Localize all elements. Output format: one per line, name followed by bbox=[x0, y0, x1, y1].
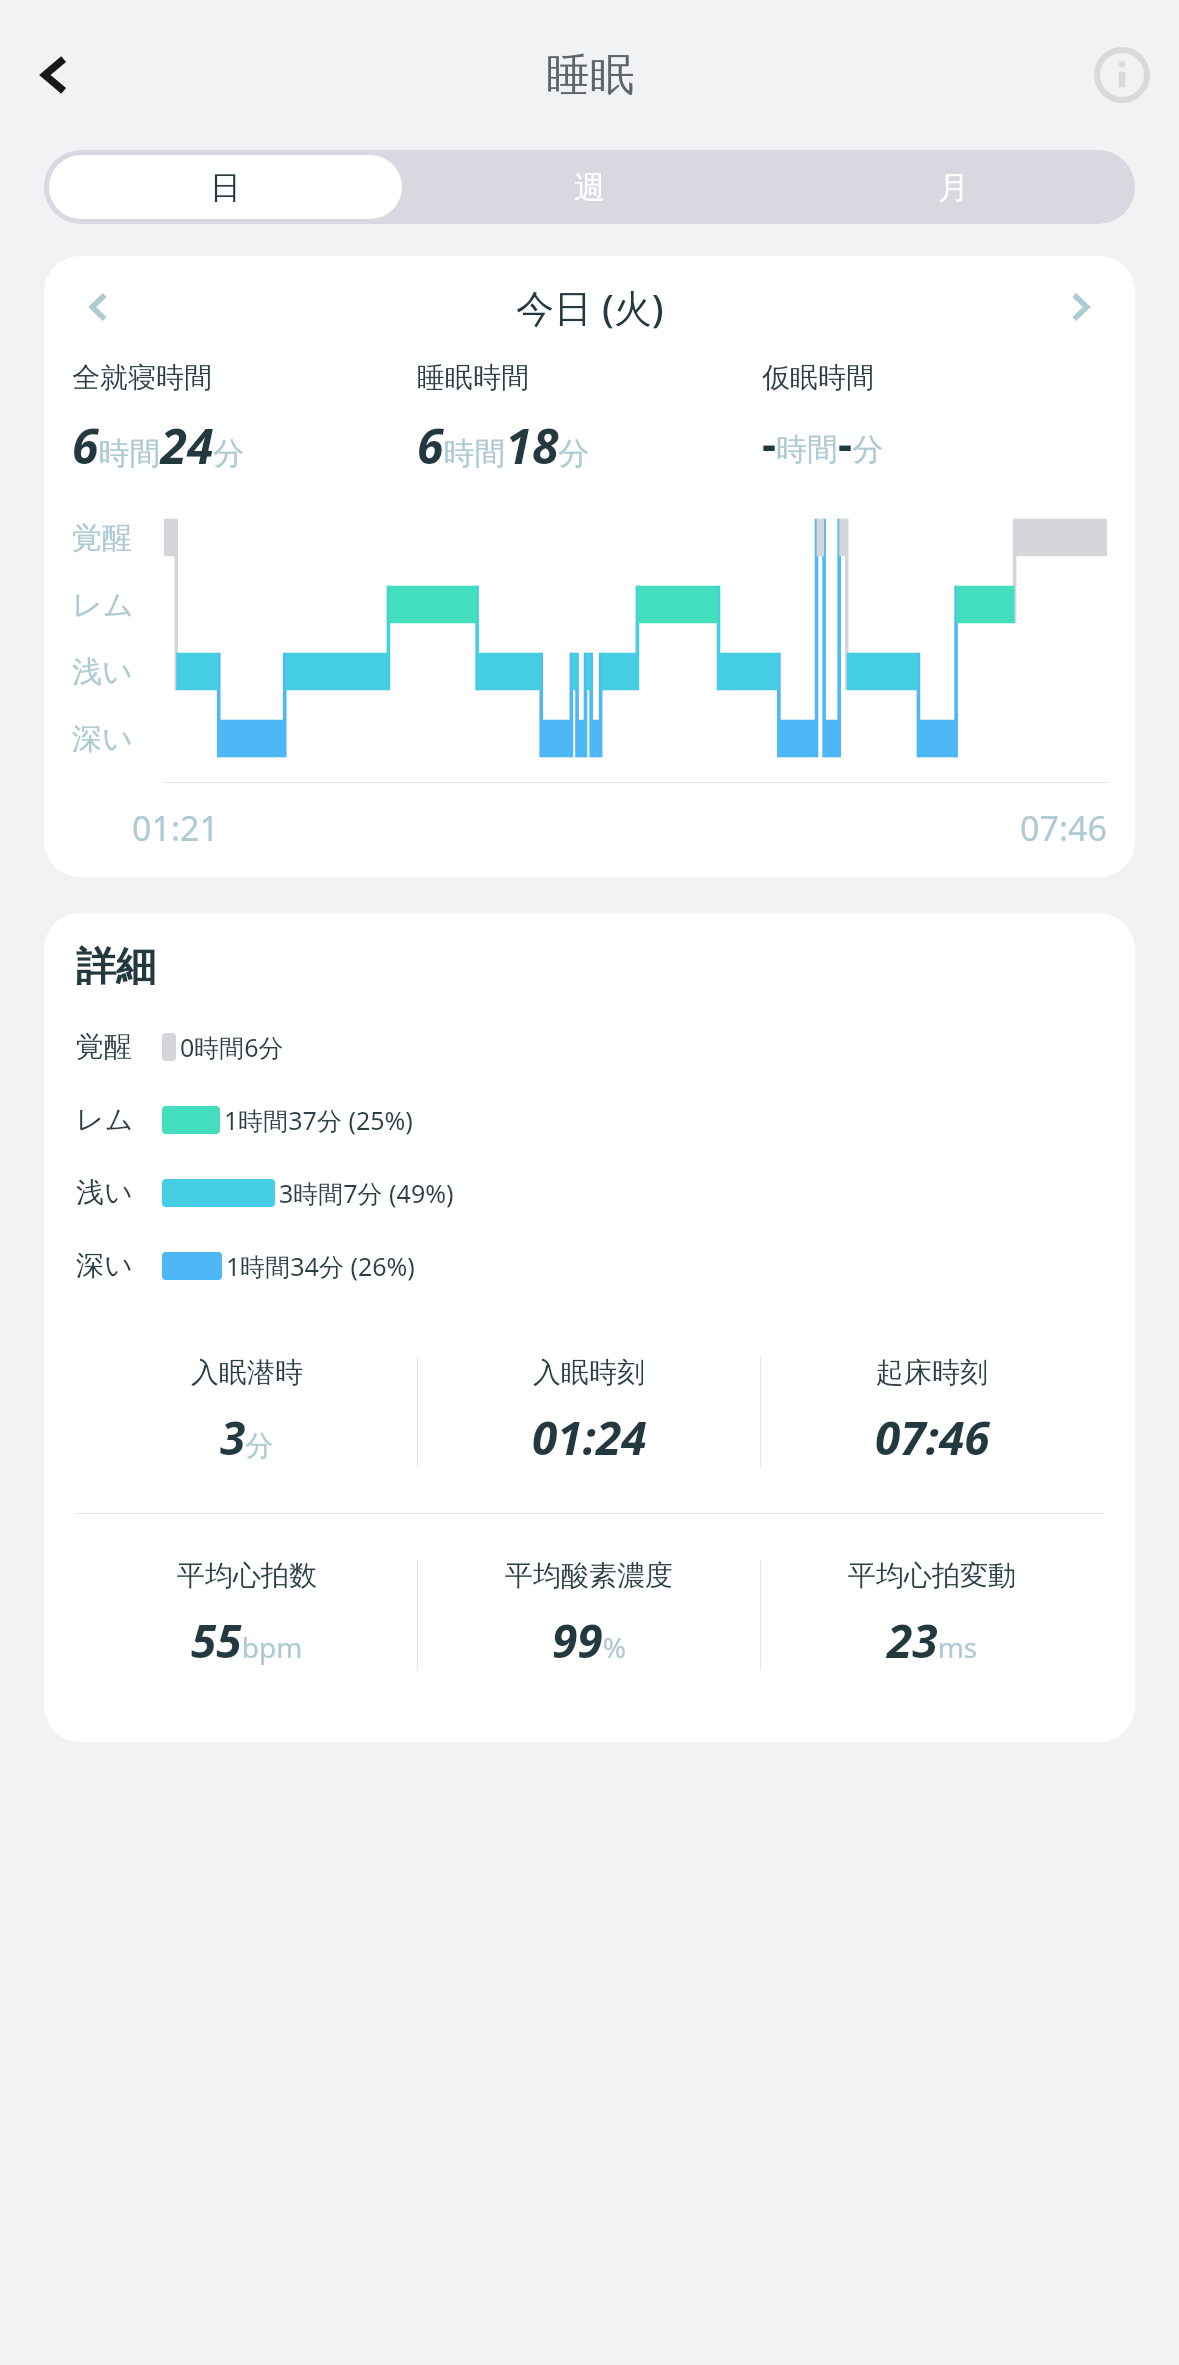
button[interactable]: Information bbox=[1087, 40, 1157, 110]
staticText: レム bbox=[76, 1102, 134, 1137]
staticText: 仮眠時間 bbox=[762, 360, 874, 395]
staticText: 覚醒 bbox=[72, 519, 132, 557]
button[interactable]: Next day bbox=[1053, 280, 1107, 334]
staticText: 平均心拍数 bbox=[177, 1558, 317, 1593]
button[interactable]: 週 bbox=[407, 150, 771, 224]
staticText: 3分 bbox=[220, 1406, 274, 1469]
staticText: 睡眠時間 bbox=[417, 360, 529, 395]
staticText: 55bpm bbox=[191, 1609, 303, 1672]
staticText: 07:46 bbox=[1020, 805, 1107, 851]
staticText: 起床時刻 bbox=[876, 1355, 988, 1390]
staticText: 全就寝時間 bbox=[72, 360, 212, 395]
staticText: 01:21 bbox=[132, 805, 219, 851]
staticText: 入眠時刻 bbox=[533, 1355, 645, 1390]
staticText: 1時間34分 (26%) bbox=[226, 1249, 415, 1283]
staticText: 深い bbox=[72, 720, 133, 758]
staticText: 週 bbox=[574, 168, 605, 207]
staticText: 3時間7分 (49%) bbox=[279, 1176, 454, 1210]
staticText: 詳細 bbox=[76, 941, 156, 991]
staticText: 07:46 bbox=[875, 1406, 990, 1469]
staticText: 平均酸素濃度 bbox=[505, 1558, 673, 1593]
staticText: 深い bbox=[76, 1248, 133, 1283]
staticText: 覚醒 bbox=[76, 1029, 132, 1064]
staticText: 6時間24分 bbox=[72, 413, 245, 478]
button[interactable]: Previous day bbox=[72, 280, 126, 334]
staticText: 睡眠 bbox=[546, 48, 634, 103]
staticText: 月 bbox=[938, 168, 969, 207]
staticText: 平均心拍変動 bbox=[848, 1558, 1016, 1593]
staticText: 6時間18分 bbox=[417, 413, 590, 478]
staticText: 日 bbox=[210, 168, 241, 207]
staticText: -時間-分 bbox=[762, 413, 884, 473]
staticText: レム bbox=[72, 586, 134, 624]
staticText: 浅い bbox=[72, 653, 133, 691]
button[interactable]: 日 bbox=[49, 155, 402, 219]
staticText: 01:24 bbox=[532, 1406, 647, 1469]
staticText: 入眠潜時 bbox=[191, 1355, 303, 1390]
button[interactable]: 月 bbox=[771, 150, 1135, 224]
staticText: 0時間6分 bbox=[180, 1030, 284, 1064]
staticText: 浅い bbox=[76, 1175, 133, 1210]
staticText: 今日 (火) bbox=[516, 281, 664, 333]
button[interactable]: Back bbox=[20, 40, 90, 110]
staticText: 99% bbox=[552, 1609, 626, 1672]
staticText: 1時間37分 (25%) bbox=[224, 1103, 413, 1137]
staticText: 23ms bbox=[887, 1609, 978, 1672]
